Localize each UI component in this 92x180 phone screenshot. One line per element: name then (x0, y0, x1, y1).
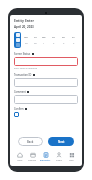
staticText: Home (17, 159, 23, 162)
staticText: 1 (43, 42, 45, 45)
button[interactable]: Back (18, 137, 43, 146)
button[interactable]: MO (22, 36, 30, 45)
staticText: FR (62, 36, 65, 39)
staticText: 4 (73, 42, 75, 45)
staticText: 30 (34, 42, 37, 45)
staticText: Profile (56, 159, 62, 162)
button[interactable]: Profile (52, 150, 65, 163)
button[interactable]: More (65, 150, 78, 163)
button[interactable]: Schedule (26, 150, 39, 163)
button[interactable]: FR (59, 36, 68, 45)
staticText: Schedule (28, 159, 37, 162)
staticText: MO (24, 36, 28, 39)
staticText: More (69, 159, 74, 162)
staticText: 3 (63, 42, 65, 45)
staticText: Confirm (14, 107, 24, 110)
staticText: Entry value is required (14, 67, 37, 70)
staticText: Screen Status (14, 52, 31, 55)
staticText: Back (27, 140, 34, 144)
button[interactable]: Home (14, 150, 26, 163)
staticText: WE (42, 36, 46, 39)
button[interactable]: Daily Entry (39, 150, 52, 163)
button[interactable]: WE (40, 36, 48, 45)
staticText: TU (34, 36, 37, 39)
staticText: Daily Entry (40, 159, 51, 162)
staticText: 2 (53, 42, 55, 45)
button[interactable]: Confirm checkbox (14, 112, 19, 117)
staticText: Entity Enter (14, 18, 34, 23)
staticText: April 20, 2023 (14, 25, 34, 29)
button[interactable]: TH (49, 36, 58, 45)
button[interactable] (14, 78, 78, 87)
staticText: 29 (25, 42, 28, 45)
staticText: Comment (14, 90, 26, 93)
button[interactable]: Next (48, 137, 74, 146)
button[interactable]: TU (31, 36, 39, 45)
staticText: Transaction ID (14, 73, 32, 76)
button[interactable] (14, 57, 78, 66)
button[interactable] (14, 95, 78, 104)
staticText: Next (58, 140, 65, 144)
button[interactable]: SA (69, 36, 78, 45)
staticText: SA (72, 36, 75, 39)
button[interactable] (14, 32, 21, 48)
staticText: TH (52, 36, 56, 39)
